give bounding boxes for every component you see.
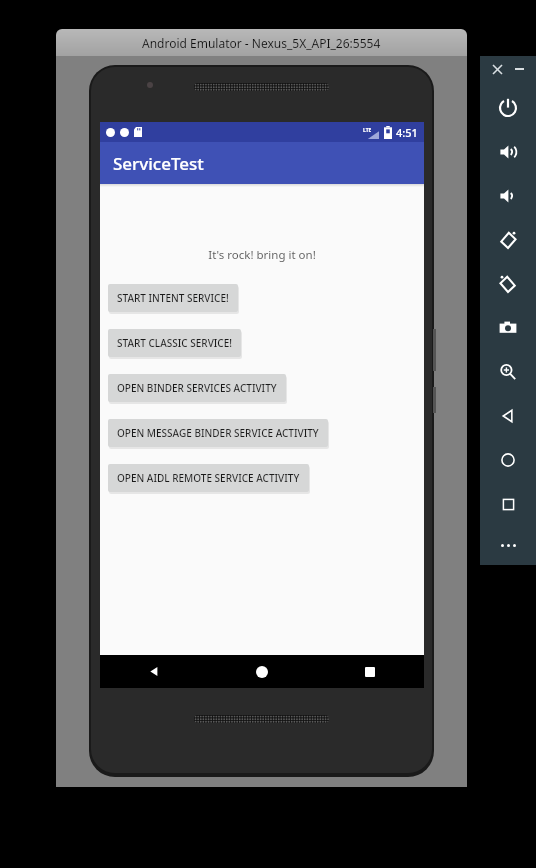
button[interactable]: START INTENT SERVICE!: [108, 284, 238, 312]
button[interactable]: Overview: [480, 482, 536, 526]
staticText: OPEN BINDER SERVICES ACTIVITY: [117, 381, 277, 395]
button[interactable]: Minimize: [511, 61, 527, 77]
button[interactable]: OPEN BINDER SERVICES ACTIVITY: [108, 374, 286, 402]
button[interactable]: Home: [208, 655, 316, 688]
button[interactable]: More: [480, 526, 536, 565]
staticText: OPEN MESSAGE BINDER SERVICE ACTIVITY: [118, 428, 320, 442]
staticText: OPEN MESSAGE BINDER SERVICE ACTIVITY: [117, 426, 319, 440]
button[interactable]: Take screenshot: [480, 306, 536, 350]
staticText: ServiceTest: [113, 152, 204, 175]
button[interactable]: Back: [100, 655, 208, 688]
staticText: START INTENT SERVICE!: [118, 293, 230, 307]
button[interactable]: Close: [489, 61, 505, 77]
staticText: Android Emulator - Nexus_5X_API_26:5554: [142, 35, 381, 51]
staticText: OPEN AIDL REMOTE SERVICE ACTIVITY: [117, 471, 300, 485]
staticText: START CLASSIC SERVICE!: [117, 336, 232, 350]
staticText: LTE: [363, 127, 372, 134]
staticText: OPEN AIDL REMOTE SERVICE ACTIVITY: [118, 473, 301, 487]
button[interactable]: OPEN MESSAGE BINDER SERVICE ACTIVITY: [108, 419, 328, 447]
button[interactable]: START CLASSIC SERVICE!: [108, 329, 241, 357]
staticText: 4:51: [396, 125, 418, 140]
button[interactable]: OPEN AIDL REMOTE SERVICE ACTIVITY: [108, 464, 309, 492]
button[interactable]: Power: [480, 86, 536, 130]
button[interactable]: Rotate right: [480, 262, 536, 306]
button[interactable]: Rotate left: [480, 218, 536, 262]
staticText: START CLASSIC SERVICE!: [118, 338, 233, 352]
staticText: OPEN BINDER SERVICES ACTIVITY: [118, 383, 278, 397]
button[interactable]: Volume up: [480, 130, 536, 174]
button[interactable]: Volume down: [480, 174, 536, 218]
staticText: START INTENT SERVICE!: [117, 291, 229, 305]
button[interactable]: Zoom: [480, 350, 536, 394]
button[interactable]: Back: [480, 394, 536, 438]
button[interactable]: Recents: [316, 655, 424, 688]
button[interactable]: Home: [480, 438, 536, 482]
staticText: It's rock! bring it on!: [100, 247, 424, 263]
